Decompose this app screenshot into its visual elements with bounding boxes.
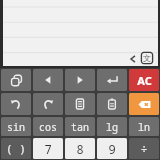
button[interactable]: cos bbox=[33, 117, 63, 136]
staticText: AC bbox=[137, 73, 152, 88]
button[interactable]: tan bbox=[65, 117, 95, 136]
staticText: 文 bbox=[143, 53, 151, 63]
button[interactable]: 8 bbox=[65, 138, 95, 159]
button[interactable]: Undo bbox=[1, 93, 31, 115]
button[interactable]: History bbox=[65, 93, 95, 115]
staticText: tan bbox=[71, 120, 89, 134]
button[interactable]: 7 bbox=[33, 138, 63, 159]
staticText: lg bbox=[106, 120, 118, 134]
staticText: cos bbox=[39, 120, 57, 134]
button[interactable]: Switch input method bbox=[140, 51, 154, 65]
button[interactable]: sin bbox=[1, 117, 31, 136]
staticText: 8 bbox=[76, 141, 84, 157]
button[interactable]: Paste bbox=[97, 93, 127, 115]
staticText: ( ) bbox=[6, 141, 26, 156]
button[interactable]: ( ) bbox=[1, 138, 31, 159]
button[interactable]: Redo bbox=[33, 93, 63, 115]
button[interactable]: Enter bbox=[97, 69, 127, 91]
button[interactable]: Backspace bbox=[129, 93, 159, 115]
staticText: ÷ bbox=[140, 141, 148, 157]
button[interactable]: Move left bbox=[33, 69, 63, 91]
staticText: sin bbox=[7, 120, 25, 134]
button[interactable]: ln bbox=[129, 117, 159, 136]
button[interactable]: Previous bbox=[126, 52, 139, 65]
staticText: ln bbox=[138, 120, 150, 134]
button[interactable]: Copy bbox=[1, 69, 31, 91]
staticText: 7 bbox=[44, 141, 52, 157]
staticText: 9 bbox=[108, 141, 116, 157]
button[interactable]: ÷ bbox=[129, 138, 159, 159]
button[interactable]: lg bbox=[97, 117, 127, 136]
button[interactable]: 9 bbox=[97, 138, 127, 159]
button[interactable]: Move right bbox=[65, 69, 95, 91]
button[interactable]: AC bbox=[129, 69, 159, 91]
